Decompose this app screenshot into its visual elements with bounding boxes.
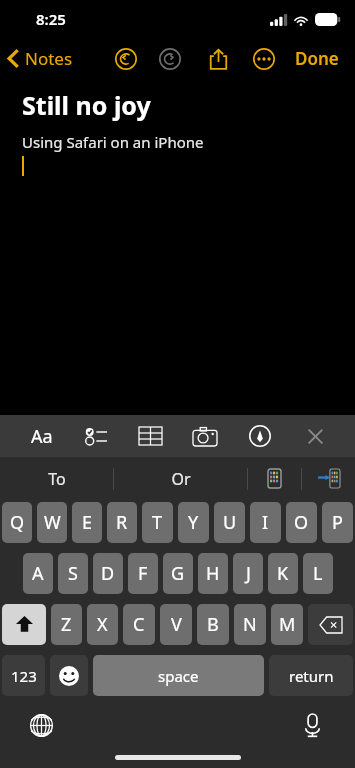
staticText: Notes	[25, 47, 73, 70]
staticText: 8:25	[36, 9, 66, 29]
staticText: H	[206, 561, 220, 586]
staticText: M	[279, 612, 296, 637]
button[interactable]: N	[234, 604, 266, 645]
staticText: G	[171, 561, 185, 586]
staticText: X	[97, 612, 108, 637]
staticText: R	[116, 510, 128, 535]
staticText: Done	[295, 47, 339, 70]
button[interactable]: Table	[130, 415, 170, 457]
button[interactable]: M	[271, 604, 303, 645]
button[interactable]: V	[160, 604, 192, 645]
staticText: Or	[171, 468, 191, 490]
staticText: V	[171, 612, 182, 637]
staticText: Aa	[31, 424, 53, 449]
staticText: A	[32, 561, 44, 586]
staticText: I	[262, 510, 269, 535]
button[interactable]: Dictate	[293, 706, 331, 744]
button[interactable]: J	[233, 553, 263, 594]
button[interactable]: Markup	[240, 415, 280, 457]
button[interactable]: X	[87, 604, 118, 645]
button[interactable]: Share	[201, 42, 235, 76]
button[interactable]: W	[37, 502, 67, 543]
staticText: L	[313, 561, 323, 586]
button[interactable]: More options	[247, 42, 281, 76]
button[interactable]: S	[58, 553, 88, 594]
button[interactable]: Z	[51, 604, 82, 645]
button[interactable]: Notes	[0, 43, 79, 74]
staticText: S	[68, 561, 78, 586]
staticText: O	[294, 510, 309, 535]
staticText: U	[223, 510, 237, 535]
staticText: T	[152, 510, 163, 535]
button[interactable]: C	[123, 604, 155, 645]
staticText: F	[138, 561, 148, 586]
staticText: To	[48, 468, 66, 490]
staticText: Y	[188, 510, 199, 535]
button[interactable]: O	[286, 502, 317, 543]
staticText: space	[158, 666, 199, 686]
button[interactable]: Checklist	[76, 415, 116, 457]
staticText: D	[101, 561, 115, 586]
staticText: Z	[61, 612, 72, 637]
button[interactable]: F	[128, 553, 158, 594]
button[interactable]: T	[142, 502, 173, 543]
button[interactable]: P	[322, 502, 353, 543]
button[interactable]: I	[250, 502, 281, 543]
button[interactable]: Change keyboard language	[22, 706, 60, 744]
staticText: W	[44, 510, 61, 535]
button[interactable]: Shift	[2, 604, 46, 645]
button[interactable]: space	[93, 655, 264, 696]
button[interactable]: To	[0, 457, 113, 500]
button[interactable]: R	[107, 502, 137, 543]
button[interactable]: L	[303, 553, 333, 594]
staticText: Q	[10, 510, 25, 535]
button[interactable]: Undo	[109, 42, 143, 76]
button[interactable]: 123	[2, 655, 45, 696]
staticText: 123	[11, 666, 37, 686]
button[interactable]: Emoji	[50, 655, 88, 696]
staticText: E	[82, 510, 93, 535]
button[interactable]: Redo	[153, 42, 187, 76]
staticText: J	[246, 561, 251, 586]
staticText: Still no joy	[22, 88, 151, 122]
button[interactable]: E	[72, 502, 102, 543]
staticText: C	[133, 612, 145, 637]
button[interactable]: K	[268, 553, 298, 594]
staticText: N	[243, 612, 257, 637]
staticText: K	[277, 561, 289, 586]
button[interactable]: Q	[2, 502, 32, 543]
button[interactable]: Or	[114, 457, 247, 500]
staticText: B	[207, 612, 219, 637]
button[interactable]: return	[269, 655, 353, 696]
button[interactable]: H	[198, 553, 228, 594]
staticText: return	[289, 666, 334, 686]
button[interactable]: D	[93, 553, 123, 594]
button[interactable]: Camera	[185, 415, 225, 457]
button[interactable]: A	[23, 553, 53, 594]
button[interactable]: Text formatting	[22, 415, 62, 457]
button[interactable]: Y	[178, 502, 209, 543]
button[interactable]: G	[163, 553, 193, 594]
button[interactable]: Close keyboard	[295, 415, 335, 457]
button[interactable]: B	[197, 604, 229, 645]
staticText: P	[332, 510, 343, 535]
button[interactable]: Incoming phone emoji suggestion	[302, 457, 355, 500]
button[interactable]: U	[214, 502, 245, 543]
staticText: Using Safari on an iPhone	[22, 132, 204, 152]
button[interactable]: Done	[287, 41, 347, 76]
button[interactable]: Phone emoji suggestion	[248, 457, 301, 500]
button[interactable]: Backspace	[308, 604, 353, 645]
